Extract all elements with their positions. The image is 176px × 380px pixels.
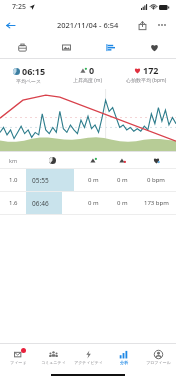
button[interactable]: アクティビティ <box>71 344 106 370</box>
staticText: km <box>9 157 18 164</box>
staticText: 0 m <box>117 176 128 184</box>
staticText: 平均ペース <box>16 78 42 84</box>
button[interactable]: Summary <box>0 36 44 58</box>
staticText: 0 m <box>88 199 99 207</box>
staticText: 06:46 <box>32 199 49 208</box>
staticText: プロフィール <box>146 360 171 365</box>
button[interactable]: Share <box>132 15 152 35</box>
button[interactable]: 1.0 <box>0 169 176 191</box>
staticText: 05:55 <box>32 176 49 185</box>
button[interactable]: プロフィール <box>141 344 176 370</box>
staticText: 0 <box>89 64 95 76</box>
button[interactable]: フィード <box>0 344 36 370</box>
staticText: コミュニティ <box>41 360 66 365</box>
staticText: 2021/11/04 - 6:54 <box>57 20 119 30</box>
staticText: 0 m <box>117 199 128 207</box>
staticText: 上昇高度 (m) <box>73 77 102 84</box>
button[interactable]: Photos <box>44 36 88 58</box>
staticText: 172 <box>143 64 159 76</box>
staticText: 1.0 <box>9 176 18 184</box>
button[interactable]: More options <box>152 15 172 35</box>
staticText: 1.6 <box>9 199 18 207</box>
staticText: 分析 <box>120 360 128 365</box>
button[interactable]: 0 <box>58 59 117 89</box>
button[interactable]: 分析 <box>106 344 141 370</box>
button[interactable]: 06:15 <box>0 59 58 89</box>
staticText: アクティビティ <box>74 360 103 365</box>
staticText: 173 bpm <box>144 199 169 207</box>
staticText: 06:15 <box>22 65 46 77</box>
button[interactable]: Analysis <box>88 36 132 58</box>
staticText: 0 m <box>88 176 99 184</box>
staticText: 7:25 <box>12 2 26 12</box>
staticText: フィード <box>10 360 27 365</box>
button[interactable]: Heart rate <box>132 36 176 58</box>
staticText: 心拍数平均 (bpm) <box>126 77 167 84</box>
button[interactable]: 172 <box>117 59 176 89</box>
staticText: 0 bpm <box>147 176 165 184</box>
button[interactable]: コミュニティ <box>36 344 71 370</box>
button[interactable]: 1.6 <box>0 192 176 214</box>
button[interactable]: Back <box>0 15 20 35</box>
